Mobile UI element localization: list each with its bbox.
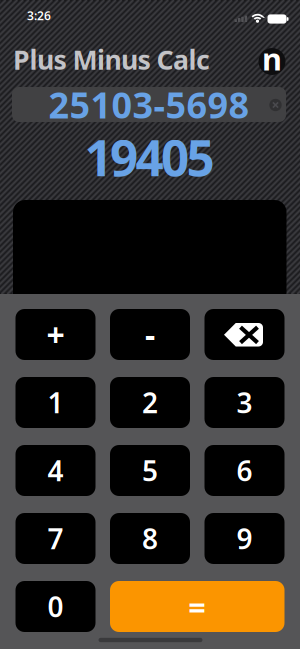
staticText: 7 xyxy=(47,520,63,557)
button[interactable]: + xyxy=(15,309,95,360)
staticText: 0 xyxy=(47,588,63,625)
staticText: 19405 xyxy=(84,124,214,190)
button[interactable]: 2 xyxy=(110,377,190,428)
button[interactable]: 25103-5698 xyxy=(12,87,286,122)
button[interactable]: Delete xyxy=(204,309,284,360)
staticText: 4 xyxy=(47,452,63,489)
button[interactable]: 1 xyxy=(15,377,95,428)
staticText: Plus Minus Calc xyxy=(13,42,210,77)
staticText: 5 xyxy=(142,452,158,489)
staticText: 6 xyxy=(236,452,252,489)
staticText: = xyxy=(188,586,206,627)
staticText: 1 xyxy=(47,384,63,421)
staticText: + xyxy=(46,313,64,356)
button[interactable]: 4 xyxy=(15,445,95,496)
button[interactable]: 8 xyxy=(110,513,190,564)
staticText: 9 xyxy=(236,520,252,557)
staticText: 3 xyxy=(236,384,252,421)
staticText: 2 xyxy=(142,384,158,421)
button[interactable]: 5 xyxy=(110,445,190,496)
button[interactable]: 6 xyxy=(204,445,284,496)
button[interactable]: = xyxy=(110,581,284,632)
button[interactable]: 3 xyxy=(204,377,284,428)
staticText: - xyxy=(145,313,155,356)
button[interactable]: 7 xyxy=(15,513,95,564)
button[interactable]: 0 xyxy=(15,581,95,632)
button[interactable]: About xyxy=(258,48,285,75)
staticText: 3:26 xyxy=(27,7,51,23)
staticText: 8 xyxy=(142,520,158,557)
button[interactable]: 9 xyxy=(204,513,284,564)
button[interactable]: - xyxy=(110,309,190,360)
staticText: n xyxy=(262,38,282,79)
staticText: 25103-5698 xyxy=(48,81,249,128)
button[interactable]: Clear text xyxy=(268,98,282,112)
